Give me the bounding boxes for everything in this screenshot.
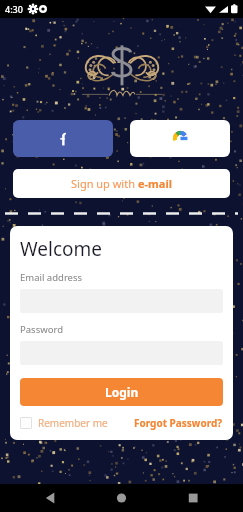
button[interactable]: Recent apps — [177, 484, 205, 512]
staticText: e-mail — [138, 176, 172, 191]
button[interactable]: Forgot Password? — [134, 416, 223, 430]
button[interactable]: Remember me — [20, 416, 108, 430]
staticText: Remember me — [38, 416, 108, 430]
button[interactable]: Sign in with Facebook — [13, 120, 113, 157]
staticText: Email address — [20, 271, 83, 284]
button[interactable]: Sign up with — [13, 169, 230, 198]
button[interactable]: Back — [38, 484, 66, 512]
staticText: 4:30 — [5, 3, 23, 15]
staticText: Sign up with — [71, 176, 138, 191]
staticText: Welcome — [20, 236, 103, 262]
button[interactable]: Login — [20, 378, 223, 406]
staticText: Login — [105, 384, 139, 400]
button[interactable]: Sign in with Google — [130, 120, 230, 157]
button[interactable]: Home — [108, 484, 136, 512]
staticText: Password — [20, 323, 63, 336]
